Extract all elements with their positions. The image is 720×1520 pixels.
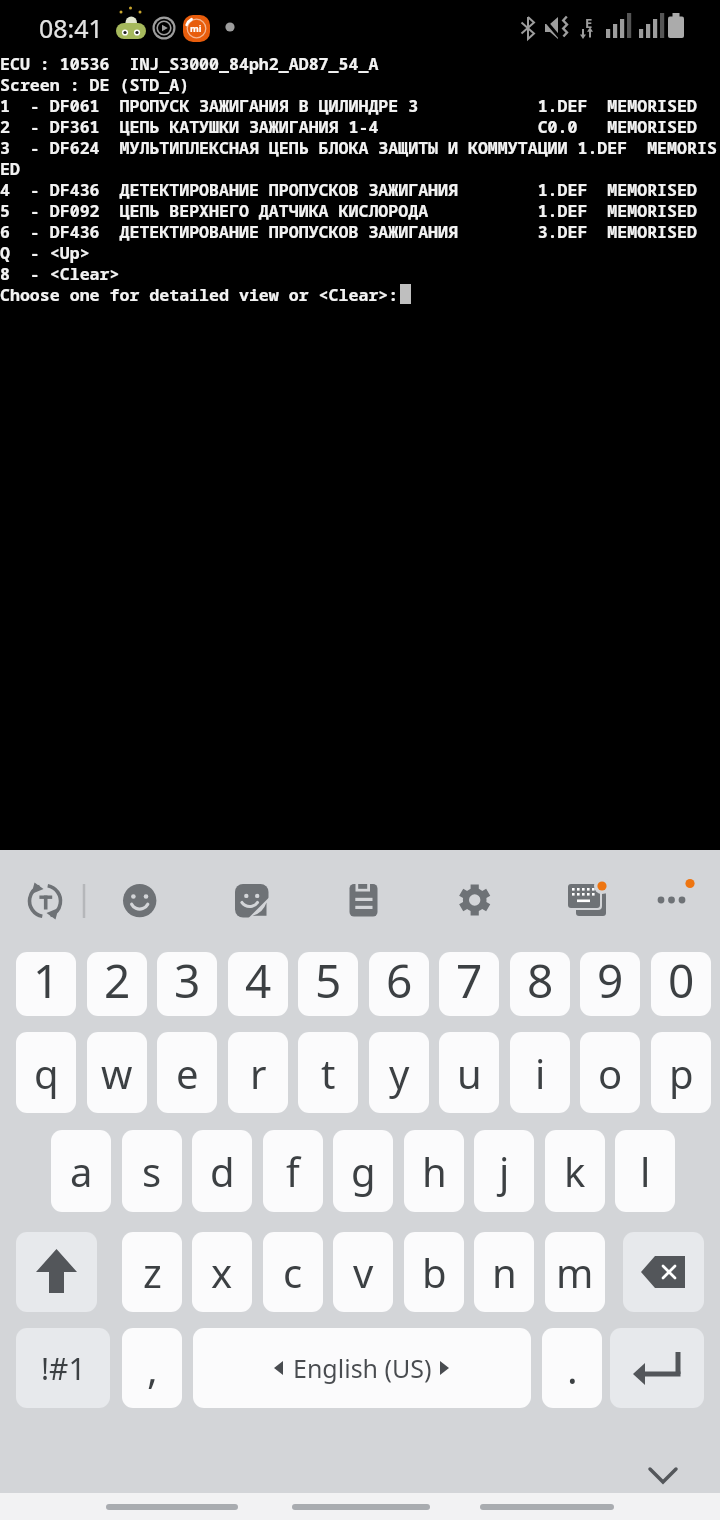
staticText: g [351, 1144, 376, 1198]
button[interactable]: i [510, 1032, 570, 1113]
staticText: c [283, 1245, 303, 1299]
staticText: English (US) [293, 1351, 432, 1385]
button[interactable]: t [298, 1032, 358, 1113]
button[interactable]: d [192, 1130, 252, 1212]
button[interactable]: f [263, 1130, 323, 1212]
button[interactable]: , [122, 1328, 182, 1408]
button[interactable]: r [228, 1032, 288, 1113]
button[interactable] [446, 875, 502, 931]
staticText: 8 [527, 952, 554, 1012]
button[interactable]: n [474, 1232, 534, 1312]
button[interactable] [17, 875, 73, 931]
staticText: !#1 [41, 1348, 86, 1389]
button[interactable]: p [651, 1032, 711, 1113]
staticText: x [211, 1245, 233, 1299]
staticText: 5 - DF092 ЦЕПЬ ВЕРХНЕГО ДАТЧИКА КИСЛОРОД… [0, 199, 697, 222]
button[interactable]: 8 [510, 952, 570, 1016]
button[interactable]: w [87, 1032, 147, 1113]
button[interactable]: q [16, 1032, 76, 1113]
staticText: l [640, 1144, 651, 1198]
button[interactable]: j [474, 1130, 534, 1212]
staticText: mi [190, 22, 202, 34]
staticText: r [250, 1046, 267, 1100]
button[interactable]: 2 [87, 952, 147, 1016]
staticText: 9 [597, 952, 624, 1012]
staticText: q [34, 1046, 59, 1100]
staticText: 5 [315, 952, 342, 1012]
staticText: ECU : 10536 INJ_S3000_84ph2_AD87_54_A [0, 52, 379, 75]
staticText: 3 - DF624 МУЛЬТИПЛЕКСНАЯ ЦЕПЬ БЛОКА ЗАЩИ… [0, 136, 717, 159]
button[interactable]: o [580, 1032, 640, 1113]
staticText: 6 - DF436 ДЕТЕКТИРОВАНИЕ ПРОПУСКОВ ЗАЖИГ… [0, 220, 697, 243]
staticText: 2 [104, 952, 131, 1012]
staticText: Choose one for detailed view or <Clear>: [0, 283, 399, 306]
button[interactable]: 7 [439, 952, 499, 1016]
button[interactable]: c [263, 1232, 323, 1312]
staticText: a [70, 1144, 93, 1198]
staticText: Q - <Up> [0, 241, 90, 264]
button[interactable]: l [615, 1130, 675, 1212]
staticText: j [499, 1144, 510, 1198]
button[interactable]: !#1 [16, 1328, 110, 1408]
button[interactable]: s [122, 1130, 182, 1212]
staticText: 3 [174, 952, 201, 1012]
button[interactable]: 0 [651, 952, 711, 1016]
staticText: 4 - DF436 ДЕТЕКТИРОВАНИЕ ПРОПУСКОВ ЗАЖИГ… [0, 178, 697, 201]
staticText: 1 - DF061 ПРОПУСК ЗАЖИГАНИЯ В ЦИЛИНДРЕ 3… [0, 94, 697, 117]
staticText: , [147, 1341, 158, 1395]
staticText: 4 [245, 952, 272, 1012]
button[interactable]: y [369, 1032, 429, 1113]
button[interactable] [334, 875, 390, 931]
staticText: i [535, 1046, 546, 1100]
staticText: t [321, 1046, 336, 1100]
button[interactable]: 3 [157, 952, 217, 1016]
button[interactable]: b [404, 1232, 464, 1312]
button[interactable]: 1 [16, 952, 76, 1016]
button[interactable]: 4 [228, 952, 288, 1016]
staticText: 08:41 [39, 11, 103, 45]
staticText: f [286, 1144, 300, 1198]
button[interactable]: h [404, 1130, 464, 1212]
staticText: n [492, 1245, 517, 1299]
button[interactable] [223, 875, 279, 931]
button[interactable]: m [545, 1232, 605, 1312]
button[interactable]: 9 [580, 952, 640, 1016]
button[interactable]: a [51, 1130, 111, 1212]
staticText: 7 [456, 952, 483, 1012]
staticText: u [457, 1046, 482, 1100]
button[interactable] [16, 1232, 97, 1312]
staticText: 1 [33, 952, 60, 1012]
staticText: e [176, 1046, 199, 1100]
staticText: h [422, 1144, 447, 1198]
staticText: y [389, 1046, 410, 1100]
staticText: 6 [386, 952, 413, 1012]
staticText: 0 [668, 952, 695, 1012]
staticText: p [669, 1046, 694, 1100]
button[interactable] [111, 875, 167, 931]
button[interactable]: e [157, 1032, 217, 1113]
button[interactable]: x [192, 1232, 252, 1312]
button[interactable] [644, 875, 700, 931]
staticText: b [422, 1245, 447, 1299]
staticText: o [598, 1046, 623, 1100]
button[interactable] [193, 1328, 531, 1408]
staticText: 8 - <Clear> [0, 262, 120, 285]
button[interactable]: 5 [298, 952, 358, 1016]
button[interactable]: 6 [369, 952, 429, 1016]
button[interactable]: u [439, 1032, 499, 1113]
button[interactable] [559, 875, 615, 931]
button[interactable]: v [333, 1232, 393, 1312]
staticText: s [142, 1144, 162, 1198]
staticText: w [101, 1046, 133, 1100]
button[interactable] [623, 1232, 704, 1312]
staticText: m [556, 1245, 594, 1299]
button[interactable]: . [542, 1328, 602, 1408]
staticText: Screen : DE (STD_A) [0, 73, 190, 96]
staticText: . [567, 1341, 578, 1395]
button[interactable]: z [122, 1232, 182, 1312]
staticText: E [585, 14, 593, 30]
staticText: z [143, 1245, 162, 1299]
button[interactable] [610, 1328, 704, 1408]
button[interactable]: k [545, 1130, 605, 1212]
button[interactable]: g [333, 1130, 393, 1212]
